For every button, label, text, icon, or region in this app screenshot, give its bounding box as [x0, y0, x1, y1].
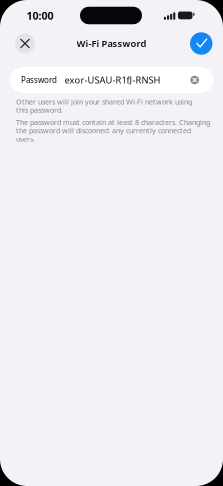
- button[interactable]: Close: [15, 33, 35, 53]
- button[interactable]: Confirm: [190, 32, 212, 55]
- staticText: The password must contain at least 8 cha…: [16, 118, 210, 143]
- button[interactable]: Clear text: [190, 76, 199, 84]
- staticText: Wi-Fi Password: [76, 37, 146, 50]
- staticText: 10:00: [26, 8, 53, 23]
- staticText: Password: [21, 75, 57, 85]
- staticText: Other users will join your shared Wi-Fi …: [16, 97, 192, 114]
- button[interactable]: Password: [21, 67, 190, 93]
- staticText: exor-USAU-R1fJ-RNSH: [64, 74, 160, 86]
